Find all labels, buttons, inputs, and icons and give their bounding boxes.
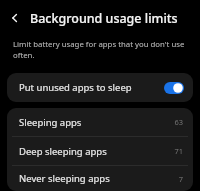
button[interactable]: Sleeping apps [7,108,193,136]
staticText: 7 [178,174,183,184]
staticText: Deep sleeping apps [19,145,107,158]
staticText: Never sleeping apps [19,172,110,185]
staticText: Limit battery usage for apps that you do… [13,39,188,61]
staticText: 71 [174,146,183,156]
button[interactable]: Put unused apps to sleep [7,73,193,102]
staticText: Background usage limits [30,10,178,27]
button[interactable]: Back [4,7,26,29]
staticText: 63 [174,117,183,127]
button[interactable]: Deep sleeping apps [7,137,193,165]
button[interactable]: Never sleeping apps [7,166,193,191]
staticText: Sleeping apps [19,116,82,129]
staticText: Put unused apps to sleep [19,81,132,94]
